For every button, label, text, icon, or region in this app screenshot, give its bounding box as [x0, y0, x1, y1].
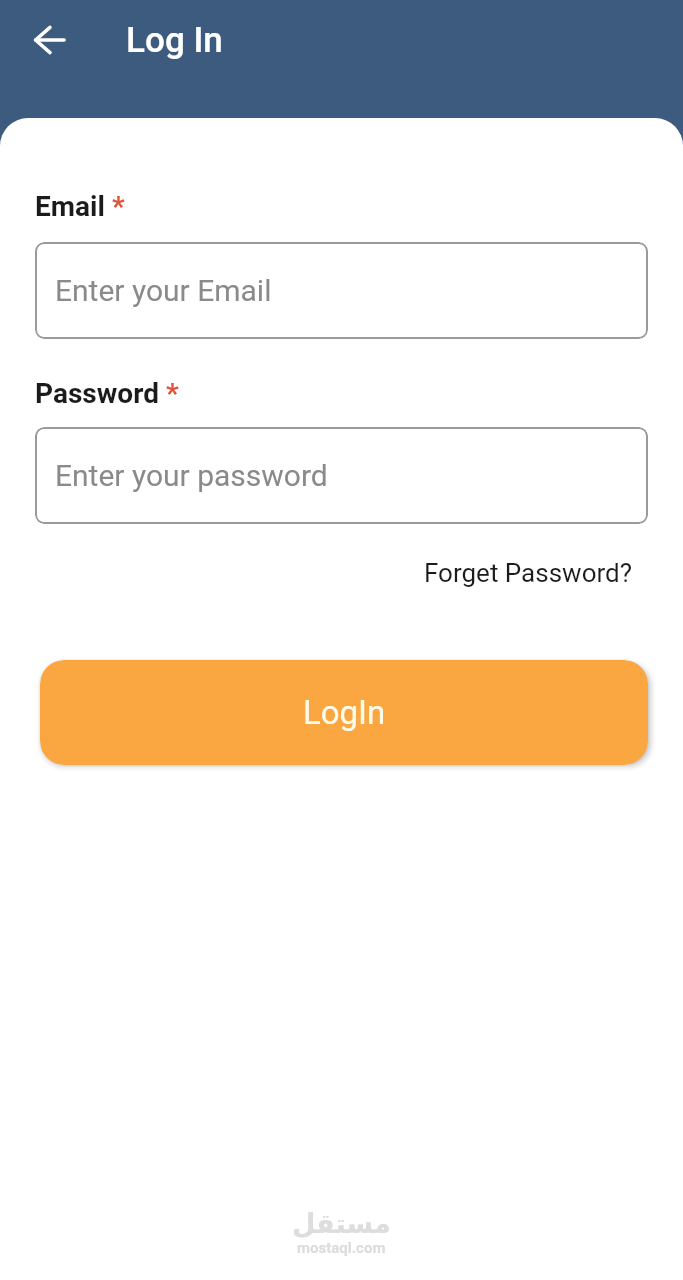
staticText: Forget Password? [424, 558, 632, 588]
staticText: * [159, 377, 179, 410]
staticText: Email [35, 190, 105, 223]
staticText: mostaql.com [297, 1239, 386, 1257]
button[interactable]: LogIn [40, 660, 648, 765]
staticText: LogIn [303, 693, 386, 732]
button[interactable]: Enter your password [35, 427, 648, 524]
staticText: Password [35, 377, 159, 410]
staticText: Enter your password [55, 458, 328, 493]
staticText: Enter your Email [55, 273, 272, 308]
staticText: Log In [126, 20, 223, 61]
staticText: مستقل [292, 1208, 391, 1239]
button[interactable] [30, 20, 70, 60]
button[interactable]: Enter your Email [35, 242, 648, 339]
button[interactable]: Forget Password? [408, 552, 648, 594]
staticText: * [105, 190, 125, 223]
